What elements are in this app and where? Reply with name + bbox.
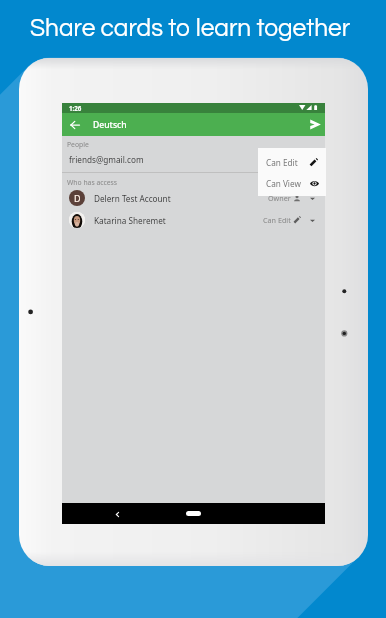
staticText: Share cards to learn together (30, 16, 351, 41)
other: More (310, 196, 315, 201)
button[interactable]: Home (186, 511, 201, 516)
button[interactable]: Send (307, 116, 324, 133)
staticText: Owner (268, 193, 291, 203)
button[interactable]: Back (111, 508, 123, 520)
staticText: D (74, 192, 81, 204)
other: Owner (293, 194, 301, 202)
staticText: Katarina Sheremet (94, 215, 166, 226)
other: Edit (309, 158, 318, 167)
staticText: Can Edit (266, 157, 298, 168)
button[interactable]: Back (66, 116, 83, 133)
staticText: 1:26 (69, 104, 82, 112)
other: Can edit (293, 216, 301, 224)
staticText: Who has access (67, 178, 118, 187)
staticText: Can Edit (263, 215, 291, 225)
other: More (310, 218, 315, 223)
staticText: People (67, 140, 89, 149)
button[interactable]: Katarina Sheremet (62, 209, 325, 231)
staticText: friends@gmail.com (69, 154, 144, 165)
button[interactable]: Can Edit (258, 153, 326, 172)
other: View (310, 180, 319, 187)
staticText: Can View (266, 178, 301, 189)
button[interactable]: D (62, 187, 325, 209)
button[interactable]: Can View (258, 174, 326, 193)
staticText: Deutsch (93, 119, 127, 131)
staticText: Delern Test Account (94, 193, 171, 204)
